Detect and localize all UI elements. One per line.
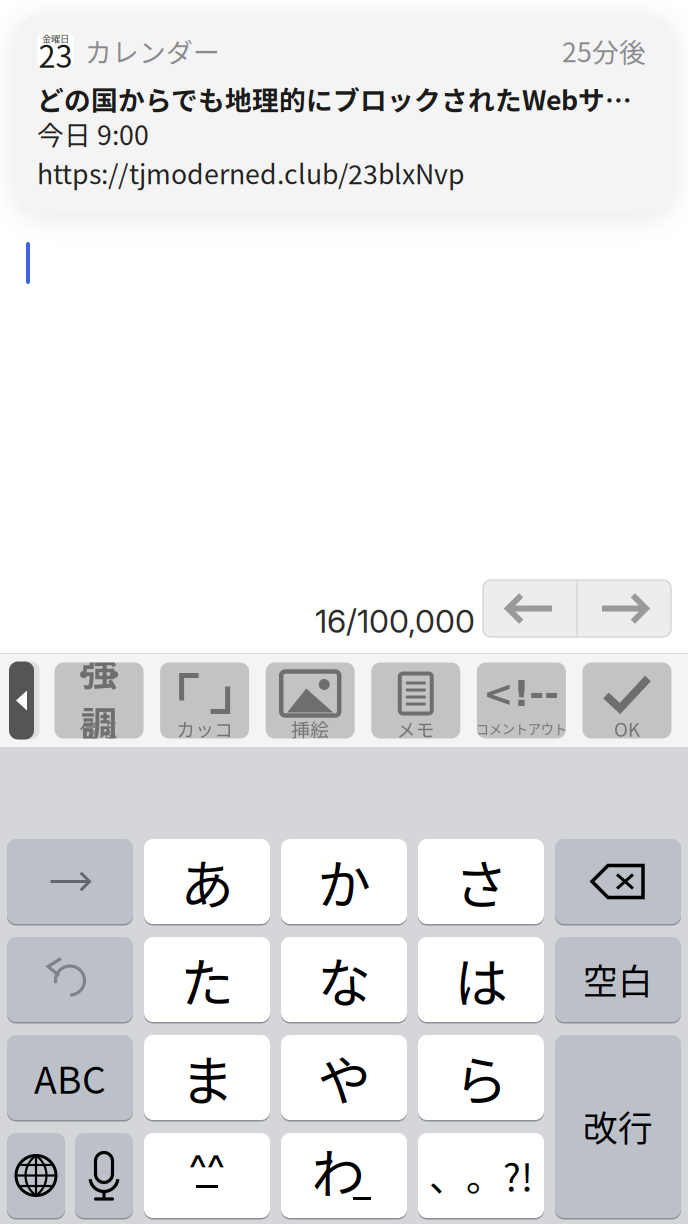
staticText: ABC — [34, 1050, 106, 1105]
button[interactable]: 挿絵 — [266, 662, 355, 738]
staticText: https://tjmoderned.club/23blxNvp — [37, 153, 465, 192]
button[interactable]: メモ — [371, 662, 460, 738]
staticText: コメントアウト — [476, 719, 567, 738]
staticText: ま — [180, 1039, 233, 1116]
staticText: 16/100,000 — [315, 602, 475, 640]
staticText: た — [180, 941, 233, 1018]
staticText: 強調 — [81, 644, 117, 749]
button[interactable]: あ — [144, 839, 270, 924]
button[interactable]: 次へ — [577, 580, 670, 637]
staticText: メモ — [397, 715, 435, 742]
button[interactable]: 金曜日 — [14, 13, 675, 214]
staticText: 25分後 — [562, 31, 646, 70]
button[interactable]: わ — [281, 1133, 407, 1218]
staticText: 傍点 — [80, 715, 118, 742]
button[interactable]: OK — [582, 662, 671, 738]
button[interactable]: 顔文字 — [144, 1133, 270, 1218]
button[interactable]: な — [281, 937, 407, 1022]
button[interactable]: ABC — [7, 1035, 133, 1120]
button[interactable]: 削除 — [555, 839, 681, 924]
staticText: 金曜日 — [42, 32, 69, 45]
staticText: カッコ — [176, 715, 233, 742]
staticText: どの国からでも地理的にブロックされたWebサイ… — [37, 79, 652, 118]
button[interactable]: か — [281, 839, 407, 924]
staticText: ら — [454, 1039, 507, 1116]
button[interactable]: や — [281, 1035, 407, 1120]
staticText: か — [317, 843, 370, 920]
button[interactable]: ツールバーを閉じる — [5, 661, 38, 739]
button[interactable]: さ — [418, 839, 544, 924]
staticText: 、。?! — [429, 1148, 533, 1203]
staticText: わ — [311, 1132, 364, 1209]
button[interactable]: 言語を切り替え — [7, 1133, 65, 1218]
button[interactable]: カッコ — [160, 662, 249, 738]
staticText: さ — [454, 843, 507, 920]
button[interactable]: ま — [144, 1035, 270, 1120]
staticText: 挿絵 — [291, 715, 329, 742]
staticText: 空白 — [583, 954, 653, 1005]
staticText: OK — [614, 715, 640, 742]
button[interactable]: <!-- — [477, 662, 566, 738]
staticText: 今日 9:00 — [37, 114, 149, 153]
button[interactable]: 空白 — [555, 937, 681, 1022]
button[interactable]: ら — [418, 1035, 544, 1120]
staticText: カレンダー — [85, 31, 220, 70]
staticText: ^^ — [189, 1144, 225, 1193]
button[interactable]: 取り消し — [7, 937, 133, 1022]
staticText: <!-- — [483, 672, 559, 714]
staticText: や — [317, 1039, 370, 1116]
button[interactable]: た — [144, 937, 270, 1022]
button[interactable]: 、。?! — [418, 1133, 544, 1218]
button[interactable]: 音声入力 — [75, 1133, 133, 1218]
staticText: な — [317, 941, 370, 1018]
button[interactable]: 次候補 — [7, 839, 133, 924]
button[interactable]: は — [418, 937, 544, 1022]
staticText: 改行 — [583, 1101, 653, 1152]
button[interactable]: 強調 — [55, 662, 144, 738]
staticText: 23 — [38, 32, 72, 77]
button[interactable]: 改行 — [555, 1035, 681, 1218]
staticText: あ — [180, 843, 233, 920]
staticText: は — [454, 941, 507, 1018]
button[interactable]: 前へ — [483, 580, 576, 637]
